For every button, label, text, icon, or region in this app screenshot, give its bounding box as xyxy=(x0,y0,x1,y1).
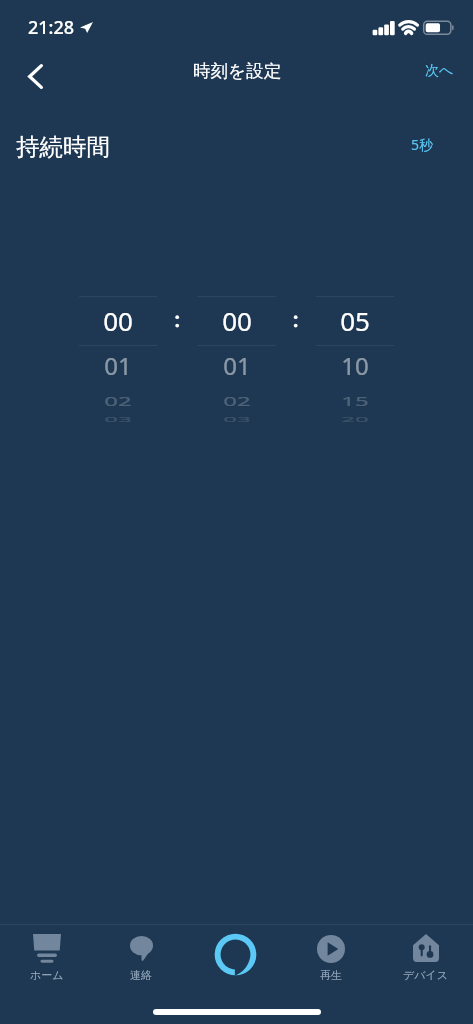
staticText: 01 xyxy=(223,351,251,382)
staticText: 5秒 xyxy=(411,135,434,154)
staticText: 再生 xyxy=(320,968,342,982)
button[interactable]: 再生 xyxy=(283,925,378,1007)
staticText: 連絡 xyxy=(130,968,152,982)
button[interactable]: ホーム xyxy=(0,925,94,1007)
button[interactable]: 00 xyxy=(198,297,276,346)
button[interactable]: 05 xyxy=(316,297,394,346)
staticText: 00 xyxy=(222,303,252,338)
button[interactable]: Alexa xyxy=(188,925,283,1007)
button[interactable]: デバイス xyxy=(378,925,473,1007)
staticText: ホーム xyxy=(30,968,64,982)
staticText: 21:28 xyxy=(28,15,75,40)
staticText: 次へ xyxy=(425,62,454,80)
button[interactable]: 次へ xyxy=(425,48,473,94)
staticText: 02 xyxy=(104,391,132,409)
staticText: 03 xyxy=(104,414,132,424)
button[interactable]: 00 xyxy=(79,297,157,346)
staticText: 02 xyxy=(223,391,251,409)
staticText: 15 xyxy=(341,391,369,409)
staticText: 00 xyxy=(103,303,133,338)
staticText: デバイス xyxy=(403,968,449,982)
staticText: 05 xyxy=(340,303,370,338)
staticText: 時刻を設定 xyxy=(193,60,281,82)
staticText: 持続時間 xyxy=(16,132,110,162)
staticText: 20 xyxy=(341,414,369,424)
button[interactable]: Back xyxy=(0,48,58,94)
staticText: 03 xyxy=(223,414,251,424)
button[interactable]: 連絡 xyxy=(94,925,188,1007)
staticText: 01 xyxy=(104,351,132,382)
staticText: 10 xyxy=(341,351,369,382)
